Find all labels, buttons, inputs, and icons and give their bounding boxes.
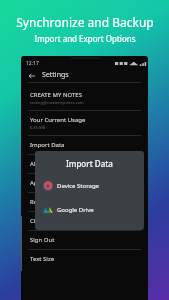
button[interactable]: Remove Unused Tags [21, 193, 148, 211]
button[interactable]: Import Data [21, 136, 148, 154]
staticText: Appearance [30, 179, 64, 187]
button[interactable]: Google Drive [35, 201, 144, 219]
staticText: Import Data [30, 141, 65, 149]
staticText: Sign Out [30, 236, 55, 244]
button[interactable]: Back [26, 70, 37, 81]
staticText: Your Current Usage [30, 116, 86, 124]
staticText: Change Account Password [30, 217, 105, 225]
button[interactable]: CREATE MY NOTES [21, 86, 148, 110]
staticText: Google Drive [57, 206, 94, 214]
staticText: 12:17 [26, 60, 39, 67]
button[interactable]: Always ask export backup [21, 155, 148, 173]
staticText: Text Size [30, 255, 55, 263]
staticText: Device Storage [57, 182, 99, 190]
button[interactable]: Sign Out [21, 231, 148, 249]
staticText: testing@createmynotes.com [30, 100, 84, 105]
staticText: Import and Export Options [34, 33, 136, 44]
button[interactable]: Change Account Password [21, 212, 148, 230]
button[interactable]: Device Storage [35, 177, 144, 195]
staticText: Settings [42, 70, 69, 80]
staticText: Import Data [66, 158, 113, 169]
button[interactable]: Appearance [21, 174, 148, 192]
button[interactable]: Text Size [21, 250, 148, 268]
staticText: Remove Unused Tags [30, 198, 91, 206]
button[interactable]: Your Current Usage [21, 111, 148, 135]
staticText: Always ask export backup [30, 160, 103, 168]
staticText: 6.45 MB [30, 125, 46, 130]
staticText: Synchronize and Backup [16, 14, 154, 30]
staticText: CREATE MY NOTES [30, 91, 82, 99]
